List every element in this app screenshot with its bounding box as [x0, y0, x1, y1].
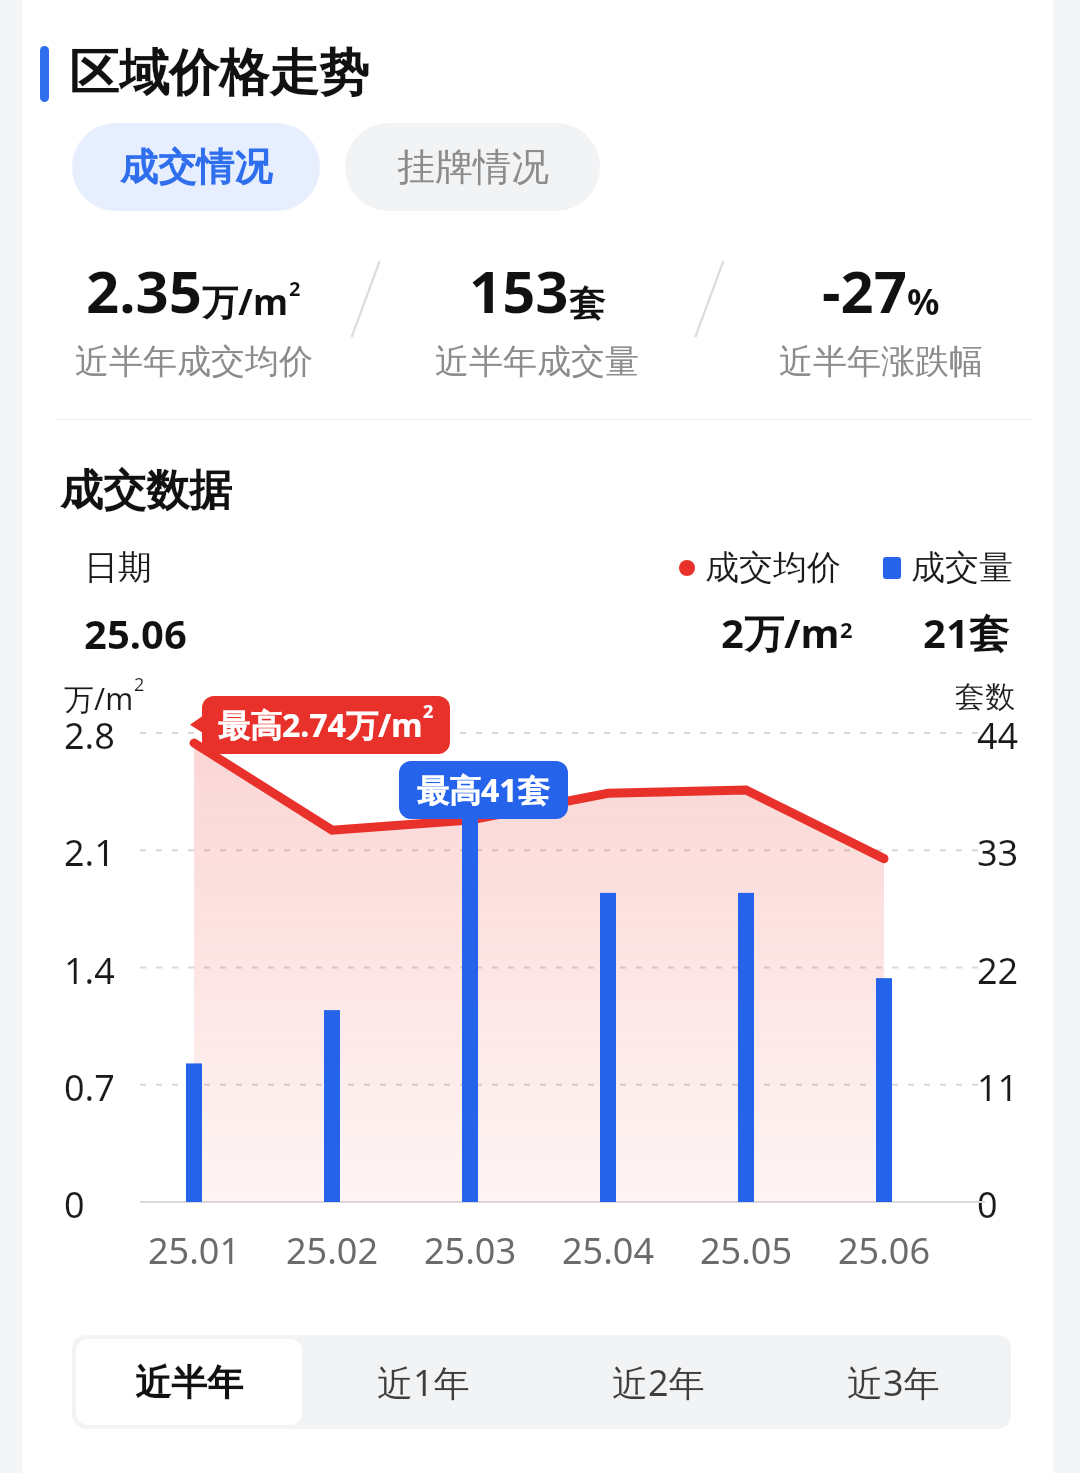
staticText: 套 — [569, 281, 605, 326]
staticText: -27 — [822, 251, 907, 330]
button[interactable]: 挂牌情况 — [345, 123, 600, 211]
staticText: 11 — [977, 1063, 1019, 1112]
staticText: 2万/m — [721, 605, 840, 660]
staticText: 2 — [134, 672, 145, 697]
button[interactable]: 成交情况 — [72, 123, 320, 211]
staticText: 25.06 — [838, 1226, 931, 1275]
staticText: 成交量 — [911, 546, 1013, 589]
button[interactable]: 近2年 — [545, 1339, 772, 1425]
staticText: 1.4 — [64, 946, 115, 995]
staticText: 日期 — [84, 546, 152, 589]
staticText: 近2年 — [612, 1358, 705, 1407]
staticText: 近3年 — [847, 1358, 940, 1407]
staticText: 25.04 — [562, 1226, 655, 1275]
staticText: 最高41套 — [417, 768, 550, 812]
staticText: 0.7 — [64, 1063, 115, 1112]
staticText: 2.35 — [86, 251, 202, 330]
staticText: 2.8 — [64, 711, 115, 760]
staticText: 套数 — [955, 678, 1015, 716]
button[interactable]: 153 — [365, 251, 709, 381]
staticText: 成交均价 — [705, 546, 841, 589]
button[interactable]: 近1年 — [310, 1339, 537, 1425]
staticText: 25.02 — [286, 1226, 379, 1275]
staticText: 2 — [840, 614, 853, 644]
staticText: % — [907, 277, 940, 326]
staticText: 万/m — [202, 277, 289, 326]
staticText: 区域价格走势 — [69, 42, 369, 105]
staticText: 近半年成交均价 — [75, 340, 313, 381]
staticText: 0 — [64, 1180, 85, 1229]
staticText: 近半年涨跌幅 — [779, 340, 983, 381]
staticText: 近1年 — [377, 1358, 470, 1407]
staticText: 近半年成交量 — [435, 340, 639, 381]
staticText: 25.06 — [84, 606, 187, 660]
staticText: 25.05 — [700, 1226, 793, 1275]
button[interactable]: 2.35 — [22, 251, 365, 381]
button[interactable]: 近3年 — [780, 1339, 1007, 1425]
staticText: 22 — [977, 946, 1019, 995]
staticText: 万/m — [64, 678, 134, 719]
staticText: 2.1 — [64, 828, 115, 877]
staticText: 21套 — [923, 605, 1009, 660]
button[interactable]: -27 — [709, 251, 1053, 381]
staticText: 挂牌情况 — [397, 143, 549, 191]
staticText: 2 — [289, 275, 301, 302]
staticText: 25.01 — [148, 1226, 241, 1275]
staticText: 成交情况 — [120, 143, 272, 191]
staticText: 33 — [977, 828, 1019, 877]
other: 最高41套 — [417, 768, 550, 812]
other: 最高成交均价 2.74万/㎡ — [218, 703, 434, 747]
staticText: 成交数据 — [60, 464, 232, 518]
staticText: 44 — [977, 711, 1019, 760]
staticText: 近半年 — [135, 1360, 243, 1405]
staticText: 25.03 — [424, 1226, 517, 1275]
staticText: 最高2.74万/m — [218, 703, 423, 747]
staticText: 0 — [977, 1180, 998, 1229]
staticText: 153 — [469, 251, 569, 330]
button[interactable]: 近半年 — [76, 1339, 302, 1425]
staticText: 2 — [423, 699, 434, 724]
